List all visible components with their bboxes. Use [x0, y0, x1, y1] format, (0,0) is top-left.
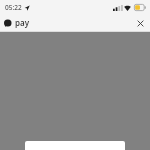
button[interactable]: Close	[133, 16, 147, 30]
staticText: 05:22	[5, 3, 22, 12]
staticText: pay	[15, 17, 30, 28]
button[interactable]: pay	[4, 17, 30, 28]
button[interactable]	[25, 141, 125, 150]
